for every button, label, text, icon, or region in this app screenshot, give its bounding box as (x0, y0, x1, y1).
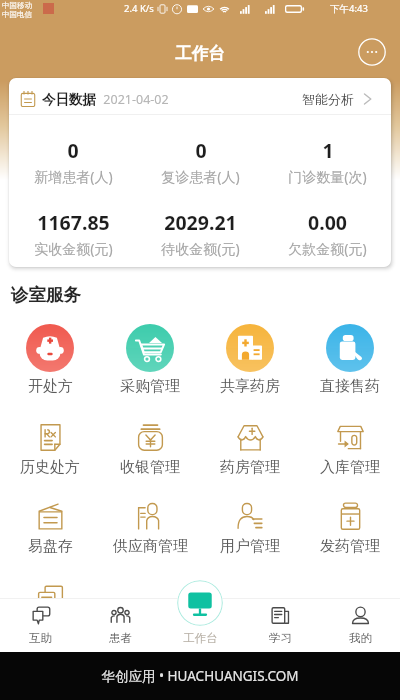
button[interactable]: 发药管理 (300, 489, 400, 568)
staticText: 待收金额(元) (161, 239, 240, 258)
staticText: 实收金额(元) (34, 239, 113, 258)
staticText: 患者 (109, 631, 132, 645)
staticText: 欠款金额(元) (288, 239, 367, 258)
staticText: 0 (195, 137, 207, 164)
staticText: 复诊患者(人) (161, 167, 240, 186)
staticText: 收银管理 (120, 458, 180, 477)
button[interactable]: 药房管理 (200, 410, 300, 489)
staticText: 历史处方 (20, 458, 80, 477)
staticText: 2029.21 (164, 209, 237, 236)
button[interactable]: 收银管理 (100, 410, 200, 489)
button[interactable]: 开处方 (0, 318, 100, 410)
staticText: 2.4 K/s (124, 2, 154, 15)
staticText: 1 (322, 137, 334, 164)
button[interactable]: 供应商管理 (100, 489, 200, 568)
button[interactable]: 我的 (320, 598, 400, 652)
staticText: 新增患者(人) (34, 167, 113, 186)
button[interactable]: 互助 (0, 568, 100, 647)
button[interactable]: 学习 (240, 598, 320, 652)
staticText: 今日数据 (42, 91, 96, 108)
staticText: 工作台 (183, 631, 218, 645)
staticText: 学习 (269, 631, 292, 645)
staticText: 易盘存 (28, 537, 73, 556)
staticText: 下午4:43 (330, 2, 368, 15)
staticText: 0.00 (308, 209, 347, 236)
staticText: 诊室服务 (11, 284, 81, 306)
staticText: 共享药房 (220, 377, 280, 396)
staticText: 用户管理 (220, 537, 280, 556)
button[interactable]: 互助 (0, 598, 80, 652)
staticText: 1167.85 (37, 209, 110, 236)
button[interactable]: 患者 (80, 598, 160, 652)
button[interactable]: 用户管理 (200, 489, 300, 568)
staticText: 工作台 (175, 43, 225, 64)
staticText: 中国电信 (2, 10, 32, 19)
staticText: 药房管理 (220, 458, 280, 477)
button[interactable]: 工作台 (160, 598, 240, 652)
other: Workbench (177, 580, 223, 626)
staticText: 华创应用 • HUACHUANGIS.COM (101, 667, 299, 685)
staticText: 互助 (35, 616, 65, 635)
staticText: 我的 (349, 631, 372, 645)
staticText: 供应商管理 (113, 537, 188, 556)
button[interactable]: 智能分析 (302, 91, 373, 107)
staticText: 直接售药 (320, 377, 380, 396)
staticText: 采购管理 (120, 377, 180, 396)
staticText: 中国移动 (2, 1, 32, 10)
staticText: 入库管理 (320, 458, 380, 477)
staticText: 互助 (29, 631, 52, 645)
staticText: 0 (67, 137, 79, 164)
button[interactable]: 共享药房 (200, 318, 300, 410)
staticText: 开处方 (28, 377, 73, 396)
button[interactable]: 易盘存 (0, 489, 100, 568)
staticText: 门诊数量(次) (288, 167, 367, 186)
button[interactable]: Messages (358, 38, 386, 66)
staticText: 发药管理 (320, 537, 380, 556)
staticText: 2021-04-02 (103, 91, 169, 108)
button[interactable]: 采购管理 (100, 318, 200, 410)
button[interactable]: 历史处方 (0, 410, 100, 489)
staticText: 智能分析 (302, 91, 354, 107)
button[interactable]: 直接售药 (300, 318, 400, 410)
button[interactable]: 入库管理 (300, 410, 400, 489)
